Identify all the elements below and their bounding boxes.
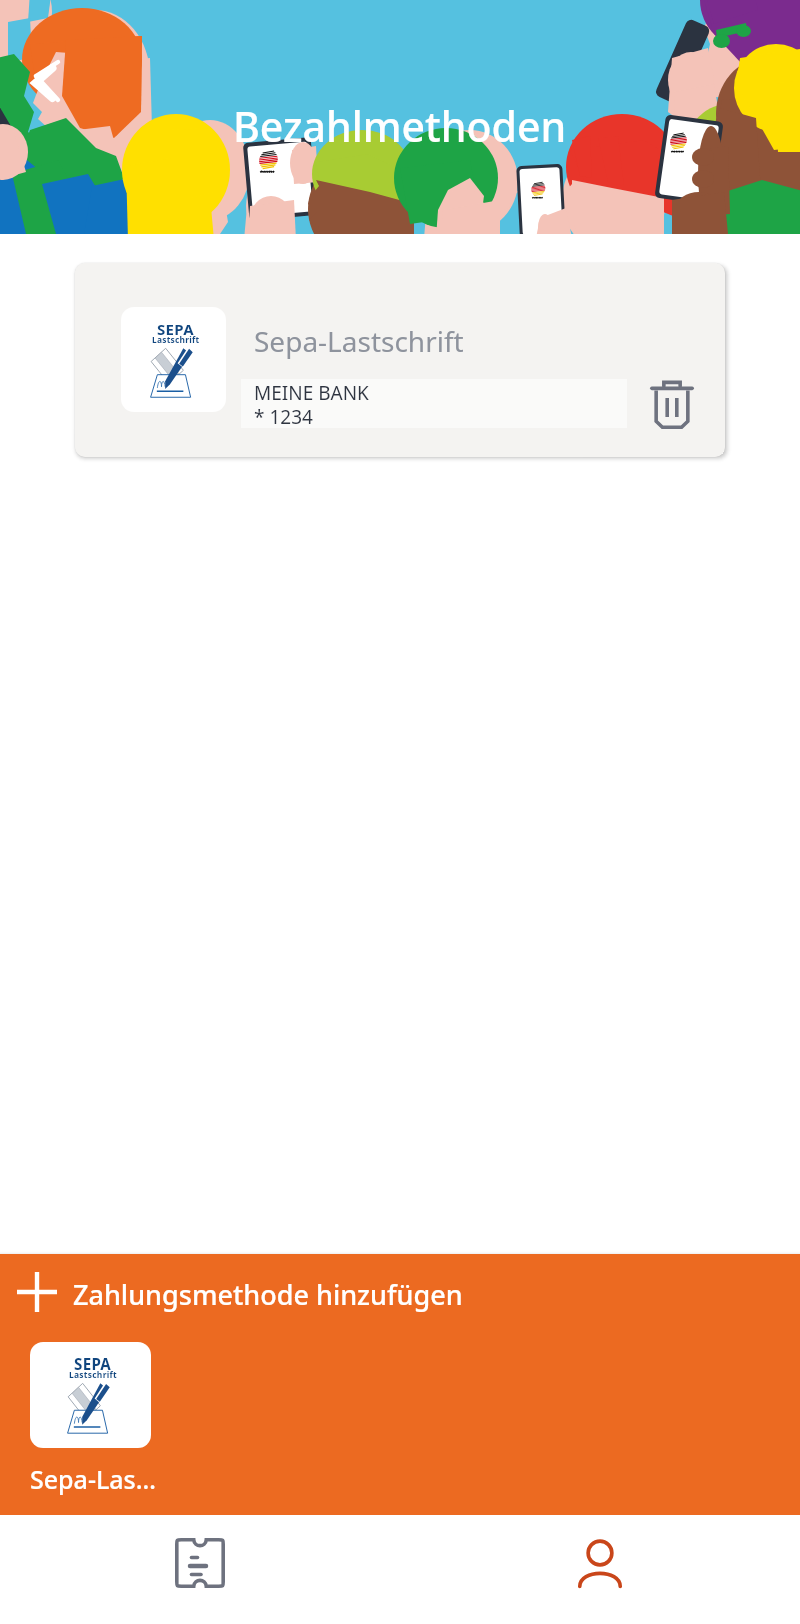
button[interactable]: SEPA xyxy=(30,1342,205,1496)
staticText: SEPA xyxy=(157,319,194,339)
button[interactable]: Tickets xyxy=(0,1515,400,1624)
button[interactable]: Löschen xyxy=(629,359,715,449)
staticText: SEPA xyxy=(74,1354,112,1375)
staticText: MEINE BANK * 1234 xyxy=(254,380,369,429)
staticText: Sepa-Lastschrift xyxy=(254,322,464,360)
button[interactable]: SEPA xyxy=(75,263,725,457)
staticText: Lastschrift xyxy=(69,1369,117,1381)
staticText: Lastschrift xyxy=(152,334,200,345)
button[interactable]: Zahlungsmethode hinzufügen xyxy=(0,1254,800,1332)
button[interactable]: Zurück xyxy=(10,48,80,118)
staticText: Sepa-Las… xyxy=(30,1462,156,1496)
staticText: Bezahlmethoden xyxy=(233,98,567,154)
button[interactable]: Profil xyxy=(400,1515,800,1624)
staticText: Zahlungsmethode hinzufügen xyxy=(73,1276,463,1313)
